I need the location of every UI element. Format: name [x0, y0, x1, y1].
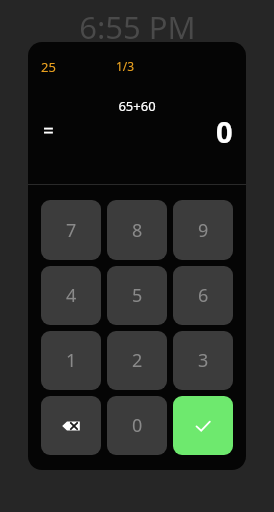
button[interactable]: Submit answer	[173, 396, 233, 455]
staticText: 0	[216, 112, 233, 151]
staticText: 7	[66, 218, 77, 243]
staticText: =	[43, 118, 54, 144]
staticText: 8	[132, 218, 143, 243]
staticText: 5	[132, 283, 143, 308]
button[interactable]: 4	[41, 266, 101, 325]
staticText: 25	[41, 58, 56, 76]
button[interactable]: 5	[107, 266, 167, 325]
button[interactable]: Backspace	[41, 396, 101, 455]
staticText: 6:55 PM	[79, 6, 196, 48]
staticText: 4	[66, 283, 77, 308]
button[interactable]: 6	[173, 266, 233, 325]
button[interactable]: 0	[107, 396, 167, 455]
staticText: 1	[66, 348, 77, 373]
staticText: 9	[198, 218, 209, 243]
button[interactable]: 2	[107, 331, 167, 390]
button[interactable]: 3	[173, 331, 233, 390]
staticText: 1/3	[116, 58, 135, 74]
button[interactable]: 9	[173, 200, 233, 260]
button[interactable]: 1	[41, 331, 101, 390]
staticText: 0	[132, 413, 143, 438]
staticText: 2	[132, 348, 143, 373]
button[interactable]: 8	[107, 200, 167, 260]
button[interactable]: 7	[41, 200, 101, 260]
staticText: 65+60	[118, 97, 156, 115]
staticText: 6	[198, 283, 209, 308]
staticText: 3	[198, 348, 209, 373]
